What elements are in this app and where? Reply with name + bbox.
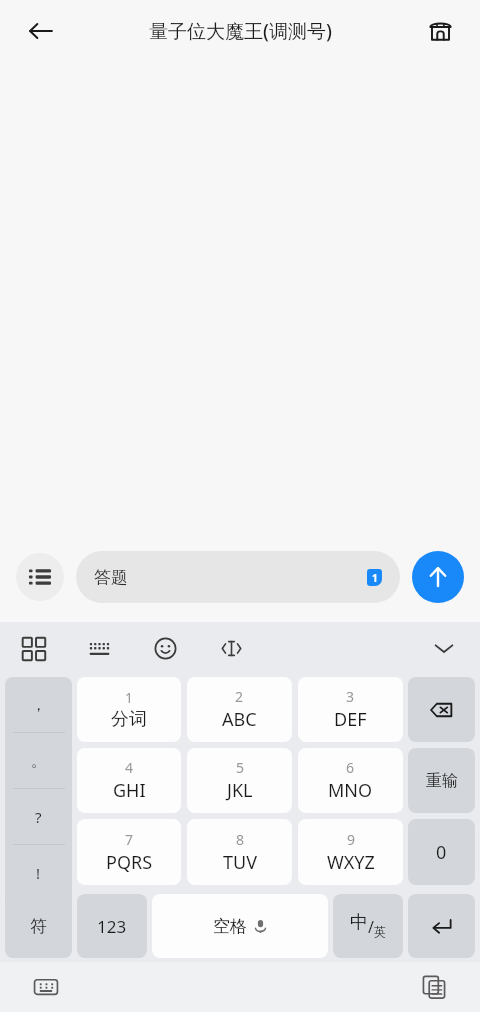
button[interactable]: 6 <box>298 748 403 813</box>
staticText: GHI <box>113 778 146 803</box>
staticText: ABC <box>222 707 257 732</box>
staticText: 8 <box>236 830 245 849</box>
button[interactable]: ! <box>5 845 72 901</box>
button[interactable] <box>5 901 72 957</box>
staticText: 5 <box>236 758 245 777</box>
staticText: 英 <box>374 924 386 939</box>
staticText: 空格 <box>213 916 247 937</box>
button[interactable]: 8 <box>187 819 292 885</box>
staticText: 量子位大魔王(调测号) <box>149 18 332 44</box>
button[interactable]: Shop <box>418 9 462 53</box>
button[interactable]: 9 <box>298 819 403 885</box>
staticText: 3 <box>346 687 355 706</box>
button[interactable]: Emoji <box>146 629 184 667</box>
button[interactable]: Send <box>412 551 464 603</box>
button[interactable]: Grid <box>14 629 52 667</box>
staticText: PQRS <box>106 850 153 875</box>
staticText: WXYZ <box>327 850 375 875</box>
staticText: 符 <box>30 916 47 937</box>
button[interactable]: 。 <box>5 733 72 789</box>
staticText: JKL <box>227 778 253 803</box>
button[interactable]: Keyboard <box>28 969 64 1005</box>
staticText: 。 <box>31 752 46 771</box>
staticText: 7 <box>125 830 134 849</box>
button[interactable]: 3 <box>298 677 403 742</box>
button[interactable]: Enter <box>408 894 475 958</box>
staticText: 4 <box>125 758 134 777</box>
button[interactable]: 1 <box>77 677 181 742</box>
button[interactable]: 2 <box>187 677 292 742</box>
button[interactable]: Hide keyboard <box>424 628 464 668</box>
staticText: ! <box>36 863 41 883</box>
button[interactable]: 中 <box>333 894 403 958</box>
staticText: 中 <box>350 911 368 934</box>
button[interactable]: Key <box>408 748 475 813</box>
staticText: 2 <box>235 687 244 706</box>
button[interactable]: ， <box>5 677 72 733</box>
button[interactable]: 4 <box>77 748 181 813</box>
button[interactable]: 符 <box>5 894 72 958</box>
staticText: 1 <box>372 571 378 585</box>
staticText: 分词 <box>111 708 147 731</box>
button[interactable]: Back <box>18 8 64 54</box>
staticText: 9 <box>347 830 356 849</box>
staticText: / <box>368 916 374 938</box>
button[interactable]: 5 <box>187 748 292 813</box>
button[interactable]: Clipboard <box>416 969 452 1005</box>
button[interactable]: ? <box>5 789 72 845</box>
button[interactable]: Edit cursor <box>212 629 250 667</box>
staticText: 0 <box>436 840 447 865</box>
button[interactable]: 答题 <box>76 551 400 603</box>
staticText: 答题 <box>94 567 128 588</box>
button[interactable]: 7 <box>77 819 181 885</box>
staticText: 1 <box>125 688 134 707</box>
button[interactable]: More options <box>16 553 64 601</box>
staticText: 123 <box>97 915 127 938</box>
button[interactable]: Key <box>408 819 475 885</box>
staticText: MNO <box>328 778 373 803</box>
staticText: ， <box>31 696 46 715</box>
staticText: 6 <box>346 758 355 777</box>
button[interactable]: 123 <box>77 894 147 958</box>
button[interactable]: Keyboard layout <box>80 629 118 667</box>
button[interactable]: Key <box>408 677 475 742</box>
staticText: DEF <box>334 707 367 732</box>
staticText: TUV <box>223 850 257 875</box>
staticText: 重输 <box>426 771 458 791</box>
button[interactable]: 空格 <box>152 894 328 958</box>
staticText: ? <box>35 807 42 827</box>
